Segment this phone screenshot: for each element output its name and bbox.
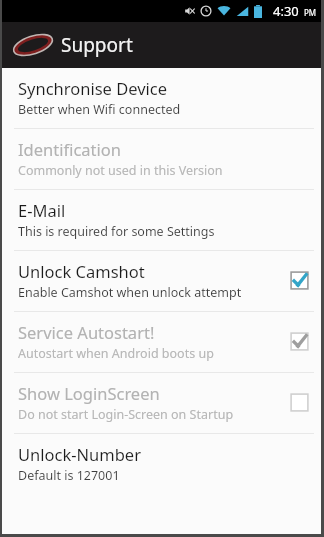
button[interactable]: Unlock-Number xyxy=(0,434,324,494)
staticText: 4:30 xyxy=(273,2,299,20)
staticText: E-Mail xyxy=(18,199,66,221)
button[interactable]: Toggle setting xyxy=(289,270,310,291)
staticText: Identification xyxy=(18,138,121,160)
staticText: Synchronise Device xyxy=(18,77,168,99)
staticText: PM xyxy=(304,7,317,18)
staticText: This is required for some Settings xyxy=(18,223,215,240)
staticText: Commonly not used in this Version xyxy=(18,162,223,179)
staticText: Unlock Camshot xyxy=(18,260,145,282)
staticText: Autostart when Android boots up xyxy=(18,345,214,362)
staticText: Better when Wifi connected xyxy=(18,101,181,118)
staticText: Unlock-Number xyxy=(18,443,141,465)
staticText: Do not start Login-Screen on Startup xyxy=(18,406,234,423)
button[interactable]: Synchronise Device xyxy=(0,68,324,128)
staticText: Show LoginScreen xyxy=(18,382,160,404)
button[interactable]: Toggle setting xyxy=(289,392,310,413)
staticText: Enable Camshot when unlock attempt xyxy=(18,284,242,301)
staticText: Default is 127001 xyxy=(18,467,120,484)
staticText: Service Autostart! xyxy=(18,321,155,343)
button[interactable]: Toggle setting xyxy=(289,331,310,352)
button[interactable]: Service Autostart! xyxy=(0,312,324,372)
button[interactable]: Unlock Camshot xyxy=(0,251,324,311)
button[interactable]: Show LoginScreen xyxy=(0,373,324,433)
button[interactable]: E-Mail xyxy=(0,190,324,250)
staticText: Support xyxy=(61,32,133,58)
button[interactable]: Identification xyxy=(0,129,324,189)
